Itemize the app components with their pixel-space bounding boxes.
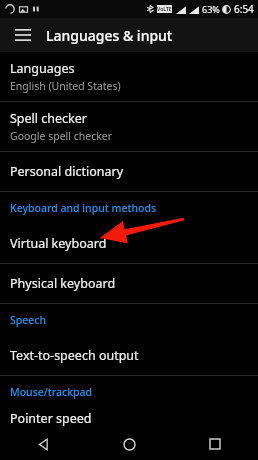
button[interactable]: Open navigation menu [0, 18, 46, 52]
button[interactable]: Recent apps [172, 428, 258, 460]
button[interactable]: Personal dictionary [0, 152, 258, 191]
staticText: Text-to-speech output [10, 347, 139, 364]
staticText: 63% [202, 3, 220, 15]
button[interactable]: Physical keyboard [0, 264, 258, 303]
staticText: VoLTE [157, 6, 172, 13]
staticText: Pointer speed [10, 410, 92, 427]
staticText: Languages & input [46, 26, 173, 45]
staticText: Google spell checker [10, 129, 113, 143]
staticText: Virtual keyboard [10, 235, 107, 252]
staticText: Physical keyboard [10, 275, 116, 292]
button[interactable]: Text-to-speech output [0, 336, 258, 375]
staticText: Keyboard and input methods [10, 201, 157, 215]
staticText: Languages [10, 60, 75, 77]
staticText: Speech [10, 313, 47, 327]
staticText: Mouse/trackpad [10, 385, 93, 399]
staticText: English (United States) [10, 79, 121, 93]
button[interactable]: Back [0, 428, 86, 460]
staticText: 6:54 [234, 2, 254, 16]
button[interactable]: Pointer speed [0, 408, 258, 428]
button[interactable]: Home [86, 428, 172, 460]
staticText: Personal dictionary [10, 163, 124, 180]
staticText: Spell checker [10, 110, 87, 127]
button[interactable]: Languages [0, 52, 258, 101]
button[interactable]: Virtual keyboard [0, 224, 258, 263]
button[interactable]: Spell checker [0, 102, 258, 151]
